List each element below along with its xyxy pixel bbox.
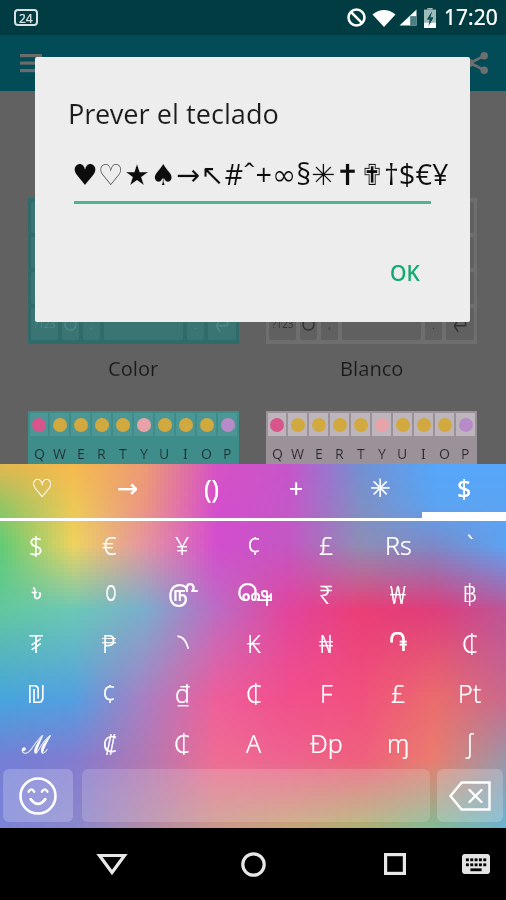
staticText: ₩: [390, 577, 406, 611]
staticText: I: [183, 444, 188, 463]
button[interactable]: Category $: [422, 464, 506, 512]
button[interactable]: ₵: [218, 668, 290, 718]
button[interactable]: Category ♡: [0, 464, 85, 512]
staticText: ʃ: [467, 726, 473, 760]
button[interactable]: ৲: [146, 618, 218, 668]
button[interactable]: Space: [82, 769, 430, 822]
staticText: ฿: [462, 579, 478, 608]
button[interactable]: ₹: [290, 569, 362, 618]
button[interactable]: ௹: [146, 569, 218, 618]
staticText: ¢: [102, 676, 117, 710]
staticText: $: [29, 528, 44, 562]
staticText: Rs: [385, 528, 412, 562]
staticText: O: [201, 444, 212, 463]
button[interactable]: ₮: [0, 618, 73, 668]
button[interactable]: Category (): [170, 464, 254, 512]
staticText: W: [53, 444, 67, 463]
button[interactable]: ௦: [73, 569, 146, 618]
staticText: ௹: [167, 581, 198, 606]
staticText: (): [204, 471, 220, 505]
button[interactable]: Q: [28, 411, 239, 557]
button[interactable]: Switch keyboard: [450, 828, 502, 900]
button[interactable]: ₦: [290, 618, 362, 668]
button[interactable]: ʃ: [434, 718, 506, 768]
staticText: ₵: [246, 676, 262, 710]
staticText: ✳: [370, 474, 391, 503]
staticText: T: [119, 444, 127, 463]
button[interactable]: ₵: [434, 618, 506, 668]
button[interactable]: £: [290, 520, 362, 569]
button[interactable]: ¥: [146, 520, 218, 569]
staticText: ௦: [104, 581, 116, 606]
staticText: Blanco: [340, 355, 404, 382]
button[interactable]: ֏: [362, 618, 434, 668]
staticText: Color: [108, 355, 159, 382]
button[interactable]: ₪: [0, 668, 73, 718]
staticText: ₡: [103, 726, 117, 760]
button[interactable]: Pt: [434, 668, 506, 718]
button[interactable]: ₡: [73, 718, 146, 768]
button[interactable]: Category →: [85, 464, 170, 512]
staticText: R: [97, 444, 106, 463]
button[interactable]: ৳: [0, 569, 73, 618]
staticText: ৲: [177, 631, 188, 656]
staticText: ৳: [32, 581, 42, 606]
staticText: ₭: [247, 626, 262, 660]
button[interactable]: Q: [266, 411, 477, 557]
staticText: ₫: [175, 676, 190, 710]
button[interactable]: ¢: [73, 668, 146, 718]
button[interactable]: Home: [223, 828, 283, 900]
button[interactable]: F: [290, 668, 362, 718]
button[interactable]: ฿: [434, 569, 506, 618]
button[interactable]: OK: [372, 253, 438, 293]
button[interactable]: ₫: [146, 668, 218, 718]
button[interactable]: $: [0, 520, 73, 569]
button[interactable]: ℳ: [0, 718, 73, 768]
staticText: £: [391, 676, 406, 710]
button[interactable]: Backspace: [437, 769, 503, 822]
button[interactable]: ˋ: [434, 520, 506, 569]
staticText: ¢: [247, 528, 262, 562]
staticText: Y: [140, 444, 148, 463]
staticText: ₮: [29, 626, 44, 660]
staticText: ,: [328, 317, 331, 332]
button[interactable]: Ɖp: [290, 718, 362, 768]
button[interactable]: ¢: [218, 520, 290, 569]
staticText: OK: [390, 259, 420, 288]
staticText: ₵: [174, 726, 190, 760]
staticText: Prever el teclado: [68, 95, 279, 132]
button[interactable]: Share: [460, 46, 494, 80]
staticText: ,: [90, 317, 93, 332]
button[interactable]: ?123: [266, 198, 477, 344]
staticText: I: [421, 444, 426, 463]
button[interactable]: Recent apps: [365, 828, 425, 900]
button[interactable]: ₭: [218, 618, 290, 668]
staticText: →: [117, 474, 138, 503]
staticText: Q: [272, 444, 283, 463]
staticText: ₵: [462, 626, 478, 660]
staticText: Q: [34, 444, 45, 463]
button[interactable]: ₱: [73, 618, 146, 668]
button[interactable]: A: [218, 718, 290, 768]
button[interactable]: £: [362, 668, 434, 718]
staticText: A: [246, 726, 262, 760]
staticText: ₪: [27, 676, 46, 710]
button[interactable]: ₵: [146, 718, 218, 768]
staticText: 24: [19, 10, 33, 26]
staticText: E: [77, 444, 85, 463]
button[interactable]: Rs: [362, 520, 434, 569]
button[interactable]: Menu: [14, 46, 48, 80]
button[interactable]: Emoji: [3, 769, 73, 822]
staticText: Y: [378, 444, 386, 463]
button[interactable]: ₩: [362, 569, 434, 618]
button[interactable]: Category +: [254, 464, 338, 512]
button[interactable]: €: [73, 520, 146, 569]
button[interactable]: Category ✳: [338, 464, 422, 512]
button[interactable]: Back: [82, 828, 142, 900]
button[interactable]: ?123: [28, 198, 239, 344]
staticText: ˋ: [467, 528, 474, 562]
staticText: P: [223, 444, 232, 463]
staticText: O: [439, 444, 450, 463]
button[interactable]: ɱ: [362, 718, 434, 768]
button[interactable]: ௸: [218, 569, 290, 618]
